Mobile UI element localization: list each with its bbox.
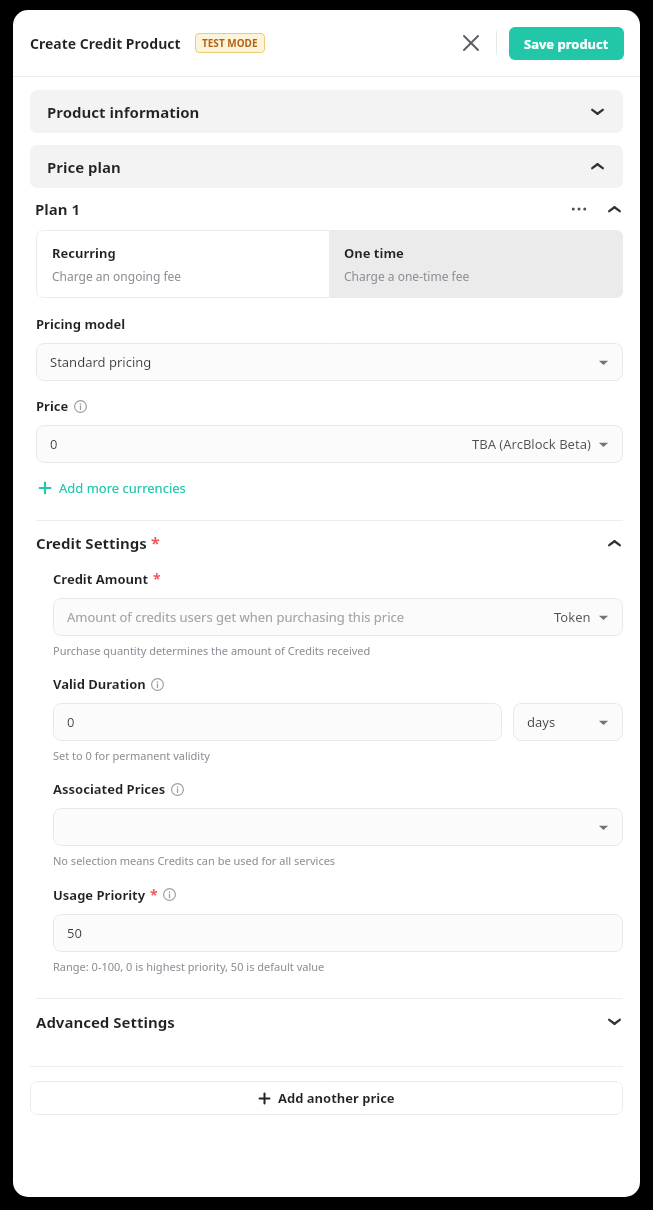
staticText: Recurring	[52, 244, 116, 262]
staticText: Credit Amount	[53, 570, 149, 588]
staticText: Charge a one-time fee	[344, 268, 470, 284]
staticText: 0	[67, 713, 75, 731]
button[interactable]: Price plan	[30, 145, 623, 188]
button[interactable]: Product information	[30, 90, 623, 133]
staticText: Product information	[47, 102, 200, 122]
staticText: Price	[36, 397, 69, 415]
button[interactable]: Close	[454, 26, 488, 60]
button[interactable]: More options	[566, 196, 592, 222]
button[interactable]: Credit Settings	[36, 521, 623, 565]
staticText: Range: 0-100, 0 is highest priority, 50 …	[53, 959, 325, 974]
button[interactable]: Save product	[509, 27, 624, 60]
staticText: Credit Settings	[36, 533, 147, 553]
staticText: Advanced Settings	[36, 1012, 175, 1032]
staticText: Plan 1	[35, 199, 81, 219]
staticText: Valid Duration	[53, 675, 146, 693]
staticText: *	[150, 885, 158, 904]
staticText: 50	[67, 924, 82, 942]
button[interactable]: Standard pricing	[36, 343, 623, 381]
staticText: One time	[344, 244, 404, 262]
button[interactable]: One time	[329, 230, 623, 298]
staticText: Associated Prices	[53, 780, 166, 798]
button[interactable]: Add more currencies	[36, 475, 188, 501]
button[interactable]: Add another price	[30, 1081, 623, 1115]
staticText: Pricing model	[36, 315, 126, 333]
button[interactable]	[53, 808, 623, 846]
staticText: *	[151, 532, 160, 554]
button[interactable]: Plan 1	[35, 188, 623, 230]
button[interactable]: TEST MODE	[195, 33, 265, 53]
button[interactable]: 0	[36, 425, 623, 463]
button[interactable]: Amount of credits users get when purchas…	[53, 598, 623, 636]
staticText: Charge an ongoing fee	[52, 268, 182, 284]
staticText: Create Credit Product	[30, 34, 181, 53]
staticText: *	[153, 569, 161, 588]
staticText: Price plan	[47, 157, 121, 177]
staticText: Add another price	[278, 1089, 395, 1107]
staticText: Amount of credits users get when purchas…	[67, 608, 405, 626]
staticText: days	[527, 713, 556, 731]
staticText: Purchase quantity determines the amount …	[53, 643, 371, 658]
staticText: 0	[50, 435, 58, 453]
staticText: Save product	[524, 35, 609, 53]
staticText: Usage Priority	[53, 886, 146, 904]
button[interactable]: Advanced Settings	[36, 999, 623, 1044]
button[interactable]: days	[513, 703, 623, 741]
staticText: Standard pricing	[50, 353, 152, 371]
staticText: Add more currencies	[59, 479, 186, 497]
staticText: Set to 0 for permanent validity	[53, 748, 210, 763]
button[interactable]: Recurring	[36, 230, 329, 298]
staticText: TBA (ArcBlock Beta)	[472, 435, 591, 453]
button[interactable]: 0	[53, 703, 502, 741]
staticText: TEST MODE	[202, 36, 258, 50]
button[interactable]: 50	[53, 914, 623, 952]
staticText: Token	[554, 608, 591, 626]
staticText: No selection means Credits can be used f…	[53, 853, 336, 868]
